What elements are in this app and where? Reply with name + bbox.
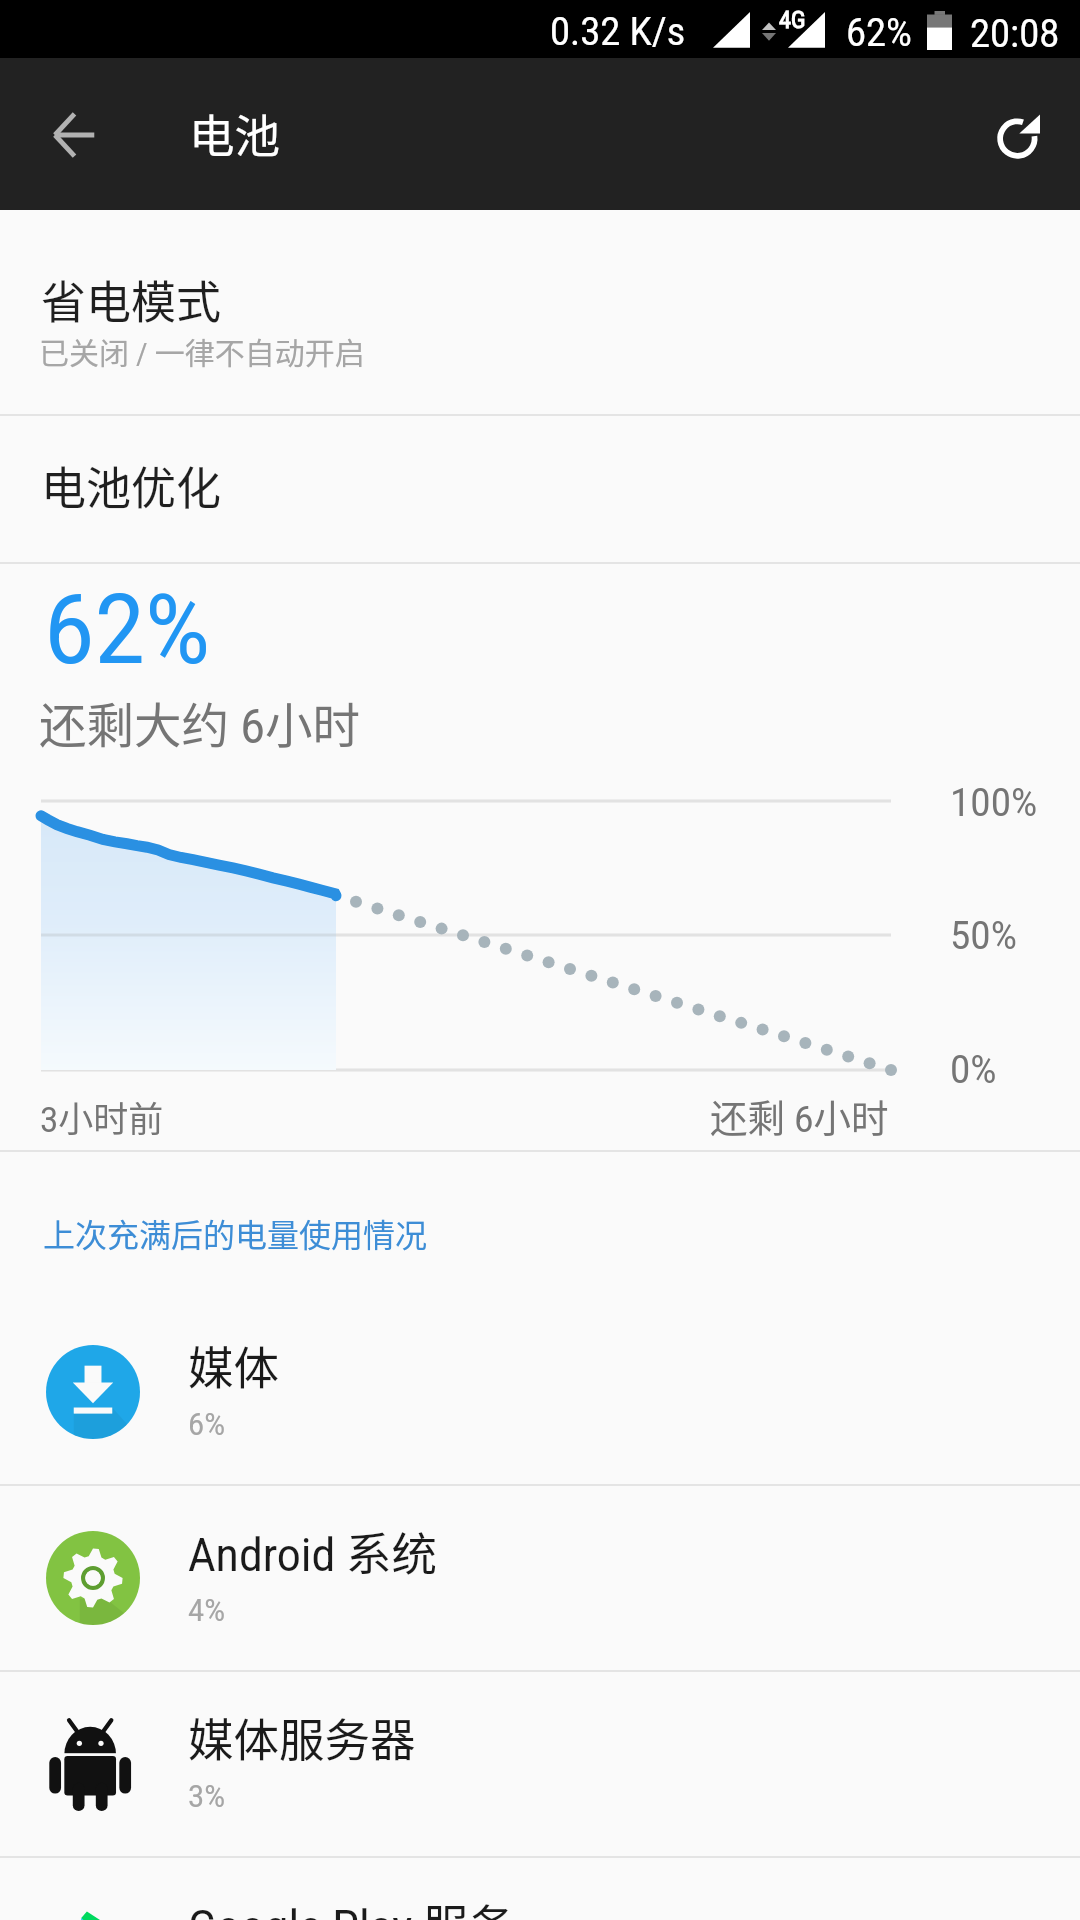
staticText: 还剩大约 6小时 — [39, 688, 360, 757]
staticText: 已关闭 / 一律不自动开启 — [39, 329, 365, 372]
staticText: 3% — [188, 1778, 226, 1814]
button[interactable]: Google Play 服务 — [0, 1858, 1080, 1920]
button[interactable]: Refresh — [928, 58, 1080, 210]
button[interactable]: 媒体 — [0, 1300, 1080, 1484]
staticText: 省电模式 — [41, 267, 222, 332]
button[interactable]: 上次充满后的电量使用情况 — [0, 1152, 1080, 1300]
staticText: 4% — [188, 1592, 226, 1628]
staticText: 62% — [846, 10, 913, 55]
staticText: 3小时前 — [40, 1091, 164, 1142]
button[interactable]: Back — [0, 58, 152, 210]
staticText: 20:08 — [970, 11, 1060, 56]
staticText: 还剩 6小时 — [710, 1088, 889, 1142]
staticText: 媒体服务器 — [188, 1704, 416, 1770]
staticText: 6% — [188, 1406, 226, 1442]
button[interactable]: 电池优化 — [0, 416, 1080, 562]
button[interactable]: 省电模式 — [0, 210, 1080, 414]
staticText: 4G — [779, 7, 806, 34]
staticText: 媒体 — [188, 1332, 280, 1398]
staticText: Google Play 服务 — [188, 1890, 514, 1920]
button[interactable]: Android 系统 — [0, 1486, 1080, 1670]
staticText: 0% — [950, 1047, 997, 1093]
staticText: 100% — [950, 780, 1038, 826]
staticText: 电池 — [189, 100, 281, 166]
staticText: 电池优化 — [41, 453, 222, 518]
staticText: Android 系统 — [188, 1518, 438, 1584]
staticText: 50% — [950, 913, 1017, 959]
staticText: 0.32 K/s — [550, 9, 686, 54]
staticText: 上次充满后的电量使用情况 — [43, 1210, 428, 1256]
staticText: 62% — [44, 573, 211, 687]
button[interactable]: 媒体服务器 — [0, 1672, 1080, 1856]
